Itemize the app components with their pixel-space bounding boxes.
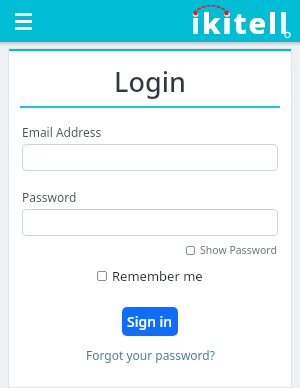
button[interactable]: ikitell	[191, 0, 300, 42]
staticText: Password	[22, 189, 77, 205]
staticText: Email Address	[22, 124, 102, 140]
button[interactable]	[22, 209, 278, 236]
button[interactable]: Show Password	[186, 243, 277, 257]
button[interactable]: Sign in	[122, 307, 178, 336]
button[interactable]	[15, 13, 32, 30]
staticText: Login	[114, 63, 186, 100]
staticText: ikitell	[191, 3, 290, 42]
button[interactable]: Remember me	[97, 267, 203, 285]
staticText: Show Password	[200, 243, 277, 257]
button[interactable]: Forgot your password?	[86, 347, 215, 363]
staticText: Remember me	[112, 267, 203, 285]
staticText: Sign in	[127, 312, 173, 331]
button[interactable]	[22, 144, 278, 171]
